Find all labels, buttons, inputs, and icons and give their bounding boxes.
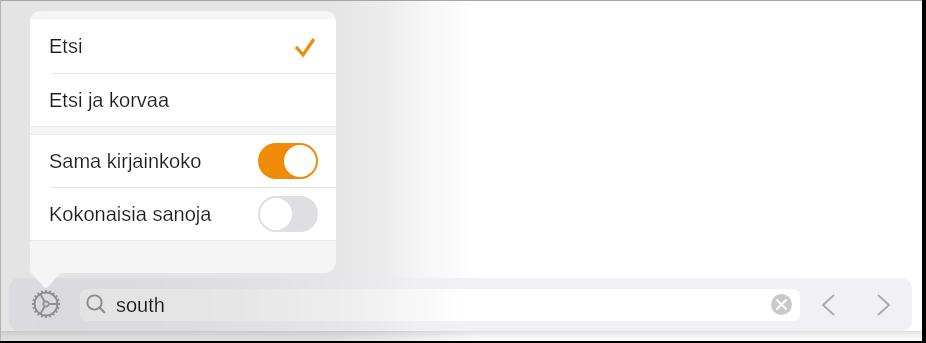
button[interactable]: Sama kirjainkoko xyxy=(30,135,336,187)
button[interactable]: Kokonaisia sanoja xyxy=(30,188,336,240)
button[interactable]: Clear search xyxy=(771,294,792,315)
staticText: south xyxy=(116,294,165,316)
button[interactable]: Next match xyxy=(868,278,898,331)
button[interactable]: Etsi xyxy=(30,19,336,73)
staticText: Sama kirjainkoko xyxy=(49,150,202,172)
staticText: Etsi ja korvaa xyxy=(49,89,170,111)
button[interactable]: south xyxy=(80,289,800,321)
staticText: Kokonaisia sanoja xyxy=(49,203,212,225)
staticText: Etsi xyxy=(49,35,83,57)
button[interactable]: Etsi ja korvaa xyxy=(30,74,336,126)
button[interactable]: Search settings xyxy=(32,290,60,318)
button[interactable]: Previous match xyxy=(813,278,843,331)
